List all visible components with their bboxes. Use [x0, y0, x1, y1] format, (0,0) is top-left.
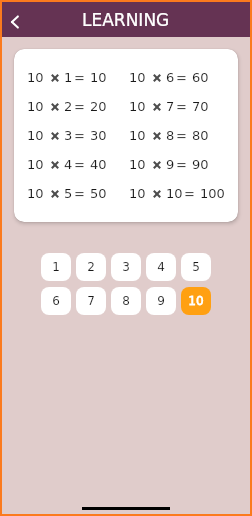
- button[interactable]: 2: [76, 253, 106, 281]
- staticText: 10: [129, 157, 146, 172]
- staticText: 40: [90, 157, 107, 172]
- staticText: 10: [129, 128, 146, 143]
- staticText: 10: [188, 294, 204, 308]
- staticText: 9: [166, 157, 175, 172]
- button[interactable]: 5: [181, 253, 211, 281]
- staticText: 7: [87, 294, 95, 308]
- staticText: 10: [27, 128, 44, 143]
- staticText: 10: [27, 99, 44, 114]
- staticText: 10: [27, 70, 44, 85]
- staticText: =: [176, 70, 187, 85]
- staticText: 2: [87, 260, 95, 274]
- staticText: 4: [64, 157, 73, 172]
- staticText: 6: [166, 70, 175, 85]
- staticText: 10: [27, 186, 44, 201]
- staticText: 50: [90, 186, 107, 201]
- staticText: 90: [192, 157, 209, 172]
- staticText: =: [184, 186, 195, 201]
- staticText: =: [176, 99, 187, 114]
- staticText: 5: [192, 260, 200, 274]
- staticText: 20: [90, 99, 107, 114]
- button[interactable]: 8: [111, 287, 141, 315]
- button[interactable]: 4: [146, 253, 176, 281]
- staticText: =: [74, 99, 85, 114]
- staticText: =: [74, 157, 85, 172]
- staticText: 1: [64, 70, 73, 85]
- staticText: 7: [166, 99, 175, 114]
- staticText: 10: [129, 70, 146, 85]
- staticText: 6: [52, 294, 60, 308]
- staticText: 30: [90, 128, 107, 143]
- button[interactable]: 7: [76, 287, 106, 315]
- staticText: 10: [90, 70, 107, 85]
- button[interactable]: 1: [41, 253, 71, 281]
- staticText: 3: [64, 128, 73, 143]
- staticText: =: [176, 128, 187, 143]
- button[interactable]: 10: [181, 287, 211, 315]
- staticText: 1: [52, 260, 60, 274]
- button[interactable]: 6: [41, 287, 71, 315]
- staticText: 8: [166, 128, 175, 143]
- staticText: 8: [122, 294, 130, 308]
- staticText: 70: [192, 99, 209, 114]
- staticText: =: [176, 157, 187, 172]
- staticText: 10: [166, 186, 183, 201]
- button[interactable]: 9: [146, 287, 176, 315]
- staticText: =: [74, 186, 85, 201]
- staticText: 5: [64, 186, 73, 201]
- staticText: 10: [27, 157, 44, 172]
- staticText: 60: [192, 70, 209, 85]
- staticText: 80: [192, 128, 209, 143]
- staticText: 9: [157, 294, 165, 308]
- staticText: 3: [122, 260, 130, 274]
- staticText: =: [74, 70, 85, 85]
- staticText: 100: [200, 186, 225, 201]
- staticText: 2: [64, 99, 73, 114]
- staticText: 10: [129, 186, 146, 201]
- staticText: =: [74, 128, 85, 143]
- staticText: 4: [157, 260, 165, 274]
- button[interactable]: 3: [111, 253, 141, 281]
- staticText: 10: [129, 99, 146, 114]
- staticText: LEARNING: [82, 10, 170, 30]
- button[interactable]: Back: [2, 5, 32, 35]
